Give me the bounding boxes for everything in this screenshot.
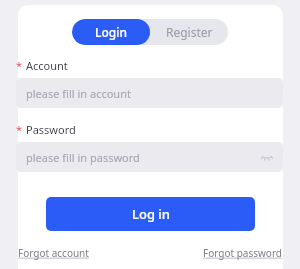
button[interactable]: Forgot password <box>202 246 282 260</box>
staticText: Forgot password <box>202 246 282 260</box>
staticText: Login <box>95 24 127 40</box>
button[interactable]: Login <box>72 19 150 45</box>
staticText: * <box>16 58 23 73</box>
button[interactable]: Show password <box>259 149 275 165</box>
staticText: please fill in password <box>26 150 140 165</box>
button[interactable]: please fill in password <box>16 142 283 172</box>
staticText: Account <box>26 58 68 73</box>
button[interactable]: Log in <box>46 197 255 231</box>
button[interactable]: Register <box>150 19 228 45</box>
button[interactable]: Forgot account <box>18 246 89 260</box>
staticText: Log in <box>132 205 170 223</box>
button[interactable]: please fill in account <box>16 78 283 108</box>
staticText: Register <box>166 24 213 40</box>
staticText: Forgot account <box>18 246 89 260</box>
staticText: please fill in account <box>26 86 131 101</box>
staticText: Password <box>26 122 76 137</box>
staticText: * <box>16 122 23 137</box>
